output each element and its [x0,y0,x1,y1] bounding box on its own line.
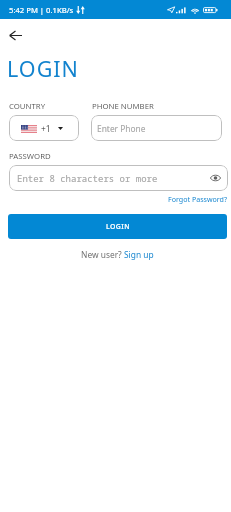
staticText: LOGIN [106,222,130,231]
button[interactable]: Show password [206,169,224,187]
button[interactable]: LOGIN [8,214,227,239]
button[interactable]: Enter Phone [91,115,222,141]
staticText: +1 [41,123,51,134]
staticText: LOGIN [7,54,79,83]
staticText: Enter 8 characters or more [17,172,158,184]
staticText: COUNTRY [9,101,46,112]
staticText: PASSWORD [9,151,51,162]
button[interactable]: Sign up [124,249,154,260]
staticText: Enter Phone [97,123,146,134]
button[interactable]: Select country code [9,115,79,141]
button[interactable]: Back [4,24,26,46]
staticText: PHONE NUMBER [92,101,154,112]
button[interactable]: Forgot Password? [168,194,228,204]
staticText: New user? [81,249,124,260]
button[interactable]: Enter 8 characters or more [9,165,228,191]
staticText: 5:42 PM | 0.1KB/s [9,5,74,15]
